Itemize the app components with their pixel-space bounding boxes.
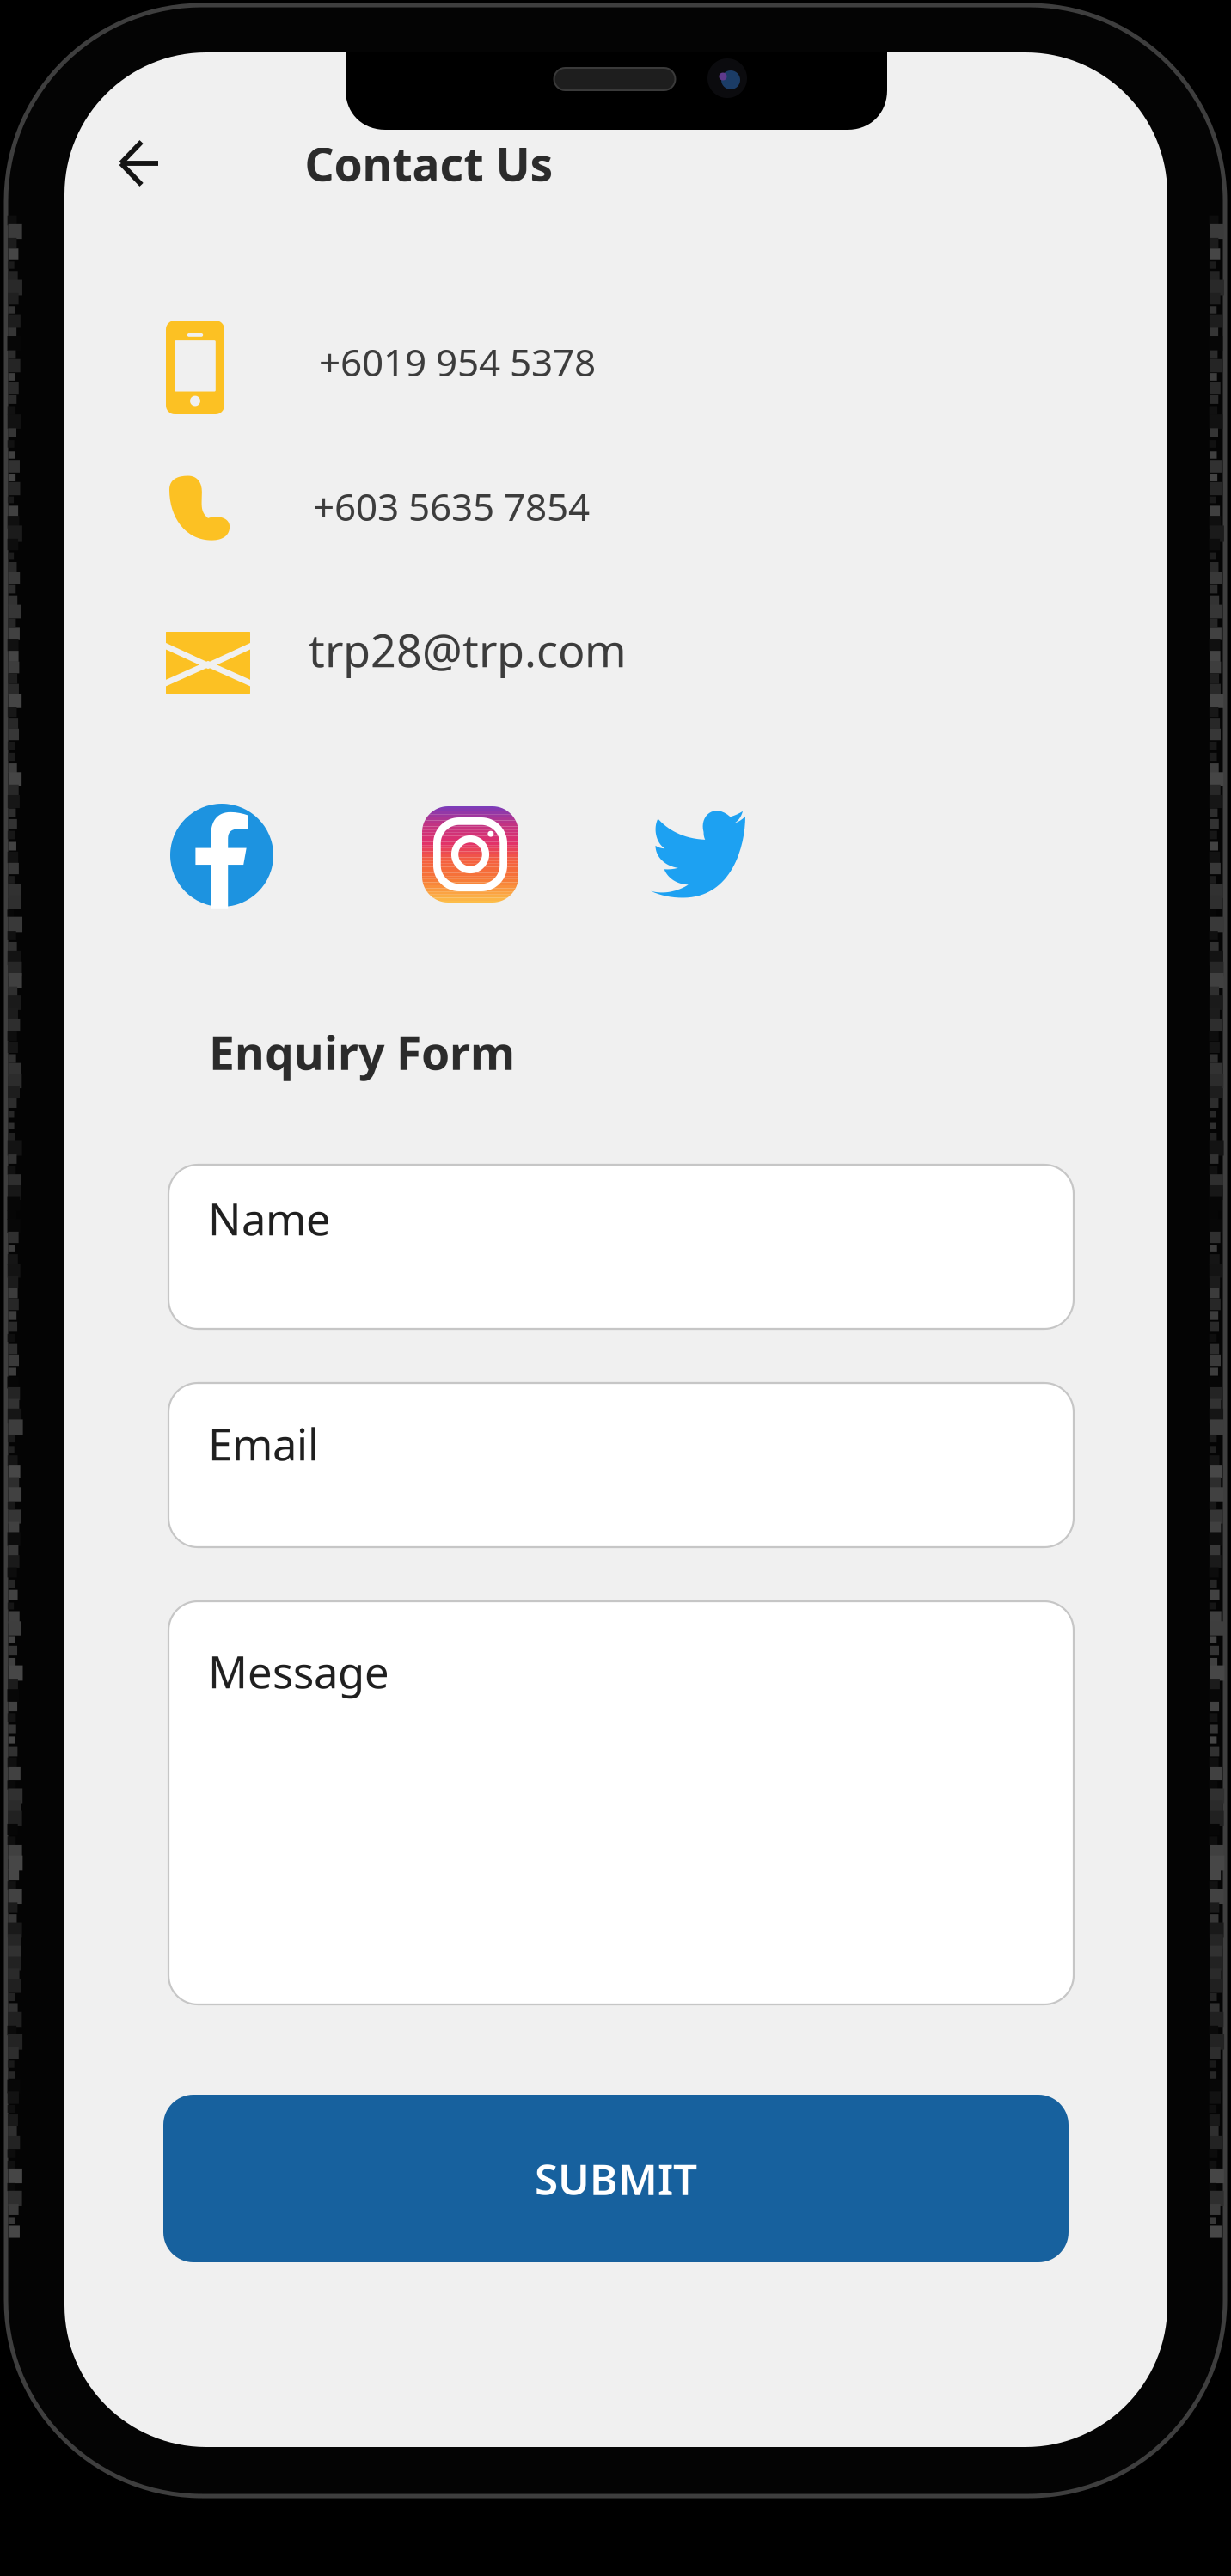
button[interactable]: Twitter [639, 797, 757, 900]
button[interactable]: trp28@trp.com [129, 602, 885, 726]
button[interactable]: Back [88, 112, 191, 215]
button[interactable]: Contact Us [298, 119, 560, 207]
button[interactable]: +603 5635 7854 [129, 443, 885, 573]
staticText: trp28@trp.com [309, 620, 627, 680]
button[interactable]: +6019 954 5378 [129, 299, 885, 435]
staticText: Name [208, 1190, 331, 1247]
button[interactable]: Facebook [165, 798, 279, 912]
staticText: SUBMIT [535, 2150, 697, 2207]
staticText: Email [208, 1415, 319, 1473]
staticText: Message [208, 1643, 389, 1700]
staticText: +6019 954 5378 [319, 337, 596, 387]
staticText: Contact Us [305, 133, 553, 194]
button[interactable]: SUBMIT [163, 2095, 1069, 2262]
staticText: +603 5635 7854 [313, 481, 590, 531]
button[interactable]: Instagram [413, 798, 527, 911]
staticText: Enquiry Form [209, 1022, 515, 1082]
